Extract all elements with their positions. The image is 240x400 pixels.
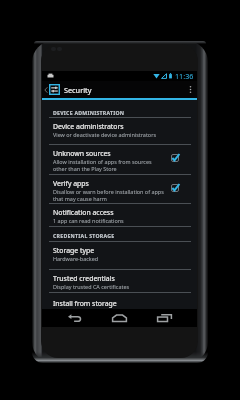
- staticText: Hardware-backed: [53, 255, 99, 262]
- button[interactable]: Verify apps: [42, 175, 197, 203]
- button[interactable]: Back: [52, 309, 97, 327]
- staticText: Trusted credentials: [53, 274, 115, 283]
- button[interactable]: Install from storage: [42, 293, 197, 309]
- button[interactable]: More options: [184, 81, 197, 98]
- staticText: Notification access: [53, 208, 114, 217]
- button[interactable]: Device administrators: [42, 118, 197, 144]
- button[interactable]: Navigate up: [42, 81, 61, 98]
- other: Toggle Verify apps: [171, 175, 190, 203]
- staticText: Unknown sources: [53, 149, 111, 158]
- staticText: Device administrators: [53, 122, 124, 131]
- button[interactable]: Storage type: [42, 242, 197, 269]
- button[interactable]: Home: [97, 309, 142, 327]
- staticText: Disallow or warn before installation of …: [53, 188, 164, 195]
- staticText: Display trusted CA certificates: [53, 283, 130, 290]
- staticText: CREDENTIAL STORAGE: [53, 232, 115, 239]
- button[interactable]: Recent apps: [142, 309, 187, 327]
- staticText: Allow installation of apps from sources: [53, 158, 152, 165]
- staticText: Security: [64, 85, 92, 95]
- staticText: View or deactivate device administrators: [53, 131, 157, 138]
- staticText: that may cause harm: [53, 195, 107, 202]
- staticText: Storage type: [53, 246, 95, 255]
- staticText: 1 app can read notifications: [53, 217, 124, 224]
- other: Toggle Unknown sources: [171, 145, 190, 174]
- staticText: Verify apps: [53, 179, 89, 188]
- button[interactable]: Notification access: [42, 204, 197, 226]
- button[interactable]: Trusted credentials: [42, 270, 197, 292]
- button[interactable]: Unknown sources: [42, 145, 197, 174]
- staticText: 11:36: [175, 71, 194, 81]
- staticText: DEVICE ADMINISTRATION: [53, 109, 125, 116]
- staticText: Install from storage: [53, 299, 117, 308]
- staticText: other than the Play Store: [53, 165, 117, 172]
